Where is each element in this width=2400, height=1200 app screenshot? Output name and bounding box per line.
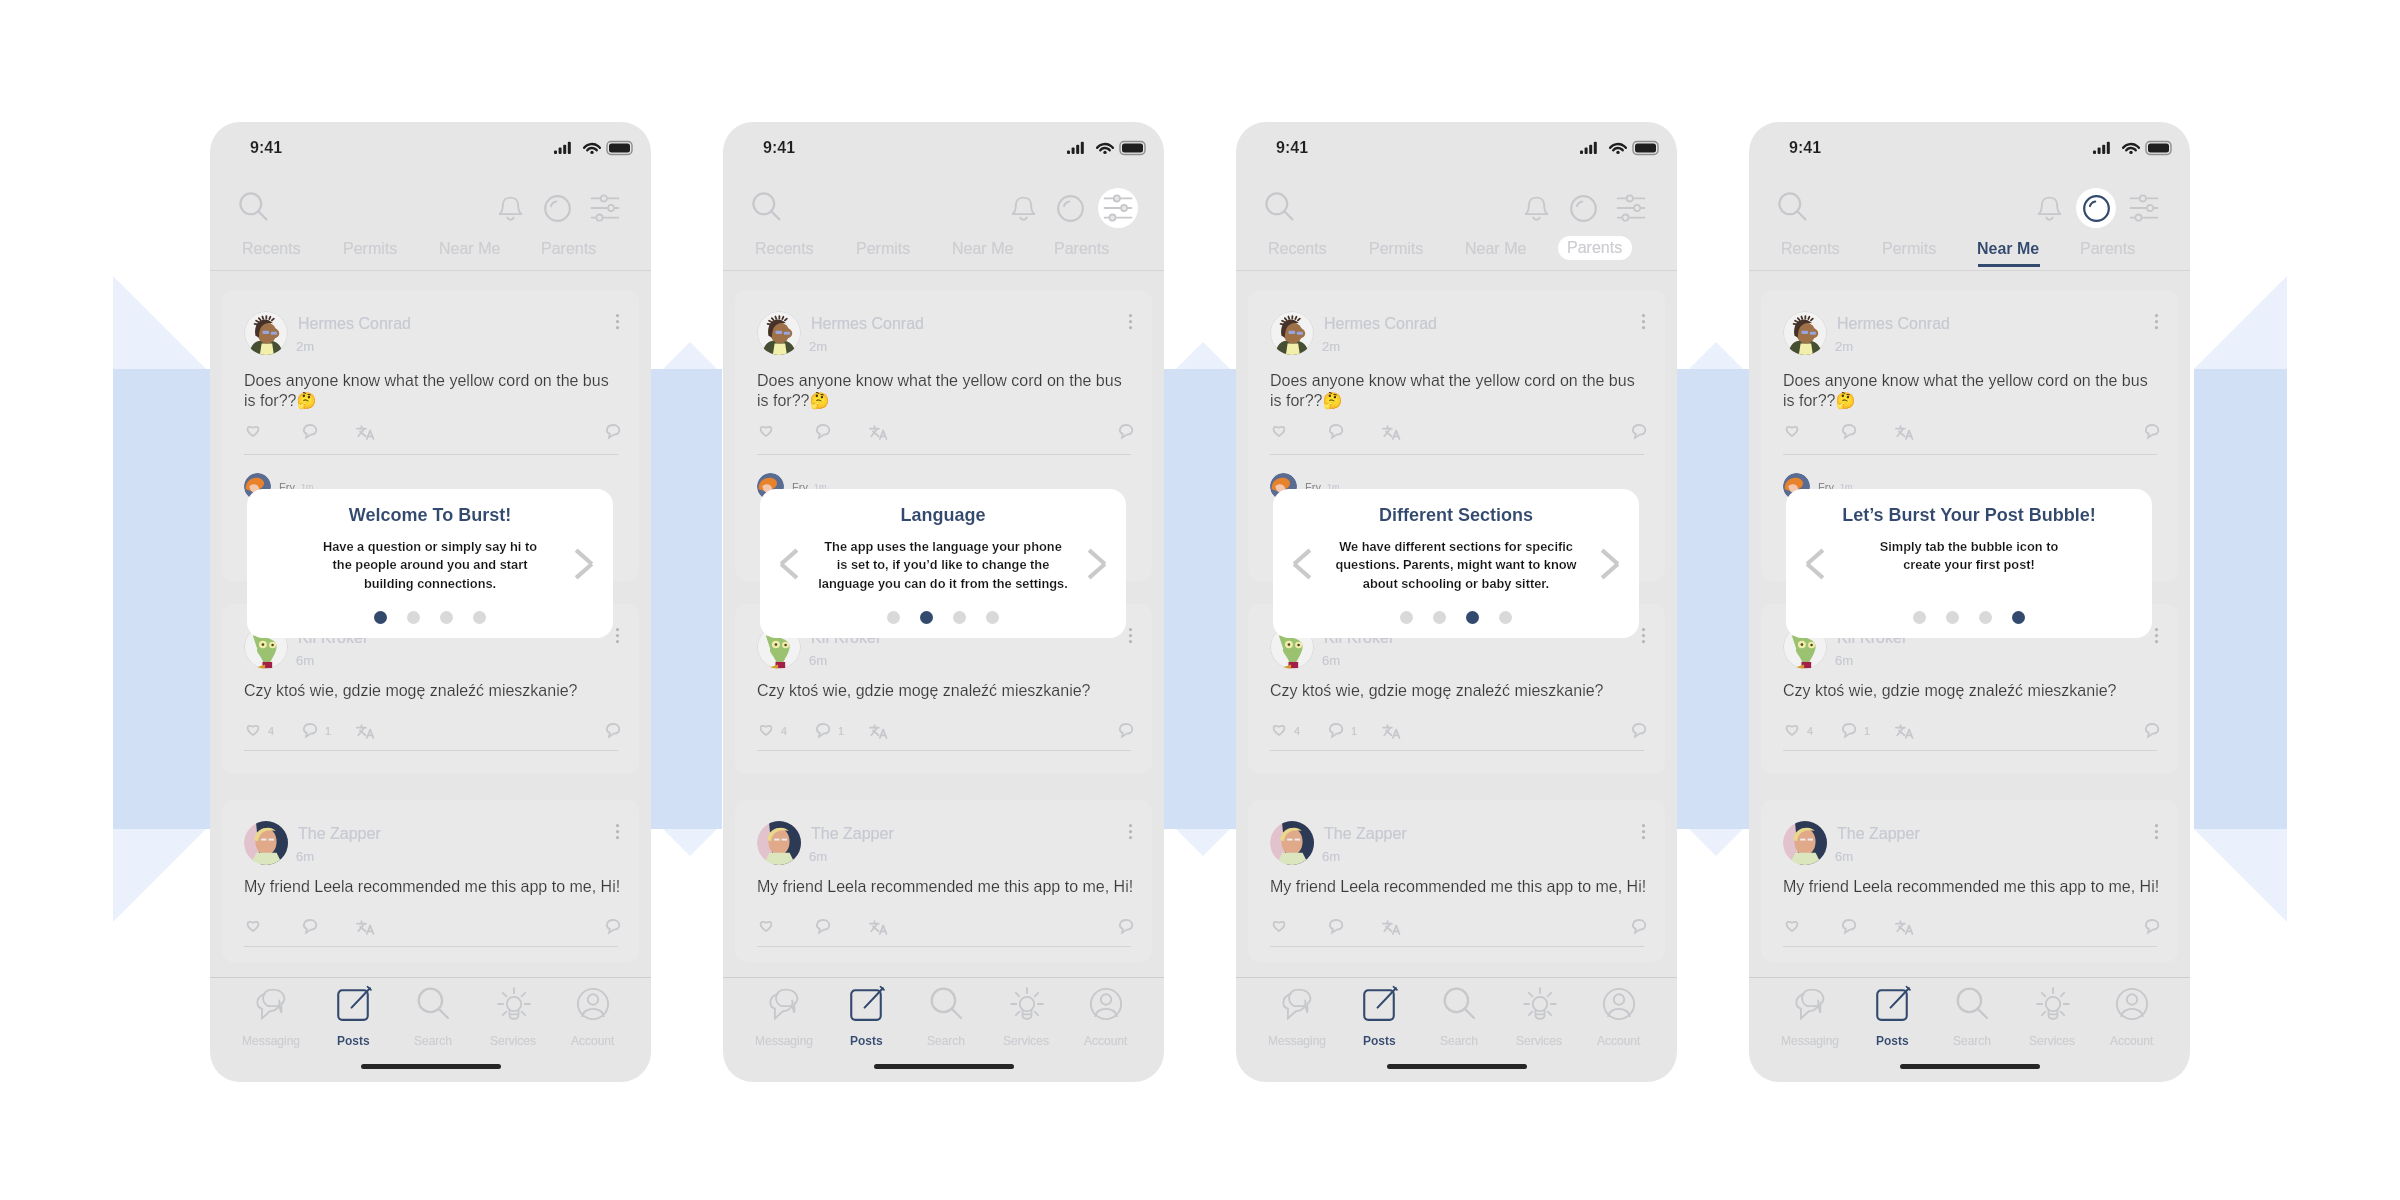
- button[interactable]: Comment: [1326, 421, 1346, 441]
- button[interactable]: Near Me: [1446, 240, 1545, 278]
- button[interactable]: Messaging: [744, 984, 825, 1054]
- button[interactable]: Parents: [1545, 240, 1644, 278]
- button[interactable]: More options: [608, 312, 626, 330]
- button[interactable]: Recents: [222, 240, 321, 278]
- button[interactable]: Like: [1783, 721, 1801, 738]
- button[interactable]: Comment: [813, 421, 833, 441]
- button[interactable]: Like: [1783, 422, 1801, 439]
- button[interactable]: Account: [553, 984, 633, 1054]
- button[interactable]: Like: [1270, 422, 1288, 439]
- button[interactable]: Services: [2012, 984, 2092, 1054]
- button[interactable]: More options: [608, 626, 626, 644]
- button[interactable]: Services: [1499, 984, 1579, 1054]
- button[interactable]: Reply: [2142, 421, 2162, 441]
- button[interactable]: Parents: [1032, 240, 1131, 278]
- button[interactable]: Like: [244, 721, 262, 738]
- button[interactable]: Parents: [2058, 240, 2157, 278]
- button[interactable]: Comment: [300, 916, 320, 936]
- button[interactable]: Action: [1563, 188, 1603, 228]
- button[interactable]: Like: [244, 422, 262, 439]
- button[interactable]: Action: [1003, 188, 1043, 228]
- button[interactable]: More options: [2147, 822, 2165, 840]
- button[interactable]: Action: [2029, 188, 2069, 228]
- button[interactable]: Previous: [768, 543, 810, 585]
- button[interactable]: Action: [490, 188, 530, 228]
- button[interactable]: Posts: [1338, 984, 1419, 1054]
- button[interactable]: Action: [2124, 188, 2164, 228]
- button[interactable]: Comment: [813, 916, 833, 936]
- button[interactable]: Search: [1777, 191, 1809, 223]
- button[interactable]: Comment: [1326, 720, 1346, 740]
- button[interactable]: Like: [1270, 721, 1288, 738]
- button[interactable]: Action: [585, 188, 625, 228]
- button[interactable]: Action: [1098, 188, 1138, 228]
- button[interactable]: More options: [2147, 312, 2165, 330]
- button[interactable]: Messaging: [231, 984, 312, 1054]
- button[interactable]: Posts: [312, 984, 393, 1054]
- button[interactable]: More options: [608, 822, 626, 840]
- button[interactable]: Like: [244, 917, 262, 934]
- button[interactable]: Action: [1516, 188, 1556, 228]
- button[interactable]: Reply: [2142, 916, 2162, 936]
- button[interactable]: Posts: [1851, 984, 1932, 1054]
- button[interactable]: Search: [393, 984, 473, 1054]
- button[interactable]: Translate: [1895, 918, 1914, 937]
- button[interactable]: Reply: [1116, 421, 1136, 441]
- button[interactable]: Search: [1932, 984, 2012, 1054]
- button[interactable]: Reply: [1629, 916, 1649, 936]
- button[interactable]: Language: [760, 489, 1126, 638]
- button[interactable]: Near Me: [420, 240, 519, 278]
- button[interactable]: Previous: [1281, 543, 1323, 585]
- button[interactable]: Account: [1579, 984, 1659, 1054]
- button[interactable]: More options: [1634, 822, 1652, 840]
- button[interactable]: Translate: [356, 423, 375, 442]
- button[interactable]: Translate: [1382, 918, 1401, 937]
- button[interactable]: Comment: [813, 720, 833, 740]
- button[interactable]: Translate: [1895, 722, 1914, 741]
- button[interactable]: Like: [757, 721, 775, 738]
- button[interactable]: The Zapper: [222, 800, 639, 962]
- button[interactable]: Like: [757, 422, 775, 439]
- button[interactable]: Translate: [869, 722, 888, 741]
- button[interactable]: Messaging: [1257, 984, 1338, 1054]
- button[interactable]: Recents: [1248, 240, 1347, 278]
- button[interactable]: Like: [1270, 917, 1288, 934]
- button[interactable]: Hermes Conrad: [735, 290, 1152, 581]
- button[interactable]: Translate: [356, 722, 375, 741]
- button[interactable]: Near Me: [1959, 240, 2058, 278]
- button[interactable]: Let’s Burst Your Post Bubble!: [1786, 489, 2152, 638]
- button[interactable]: Messaging: [1770, 984, 1851, 1054]
- button[interactable]: Translate: [356, 918, 375, 937]
- button[interactable]: Recents: [735, 240, 834, 278]
- button[interactable]: Account: [1066, 984, 1146, 1054]
- button[interactable]: Reply: [1116, 916, 1136, 936]
- button[interactable]: Different Sections: [1273, 489, 1639, 638]
- button[interactable]: Next: [1589, 543, 1631, 585]
- button[interactable]: Permits: [1860, 240, 1959, 278]
- button[interactable]: Search: [1419, 984, 1499, 1054]
- button[interactable]: Comment: [300, 421, 320, 441]
- button[interactable]: Services: [473, 984, 553, 1054]
- button[interactable]: Action: [537, 188, 577, 228]
- button[interactable]: Action: [1611, 188, 1651, 228]
- button[interactable]: The Zapper: [1248, 800, 1665, 962]
- button[interactable]: Comment: [1326, 916, 1346, 936]
- button[interactable]: Permits: [321, 240, 420, 278]
- button[interactable]: Comment: [1839, 916, 1859, 936]
- button[interactable]: Translate: [1382, 722, 1401, 741]
- button[interactable]: Hermes Conrad: [1761, 290, 2178, 581]
- button[interactable]: More options: [1634, 312, 1652, 330]
- button[interactable]: Posts: [825, 984, 906, 1054]
- button[interactable]: Translate: [1382, 423, 1401, 442]
- button[interactable]: Parents: [519, 240, 618, 278]
- button[interactable]: Like: [757, 917, 775, 934]
- button[interactable]: Kif Kroker: [1761, 604, 2178, 774]
- button[interactable]: Translate: [1895, 423, 1914, 442]
- button[interactable]: Kif Kroker: [222, 604, 639, 774]
- button[interactable]: Action: [1050, 188, 1090, 228]
- button[interactable]: Previous: [1794, 543, 1836, 585]
- button[interactable]: Welcome To Burst!: [247, 489, 613, 638]
- button[interactable]: Reply: [603, 916, 623, 936]
- button[interactable]: Hermes Conrad: [1248, 290, 1665, 581]
- button[interactable]: Comment: [300, 720, 320, 740]
